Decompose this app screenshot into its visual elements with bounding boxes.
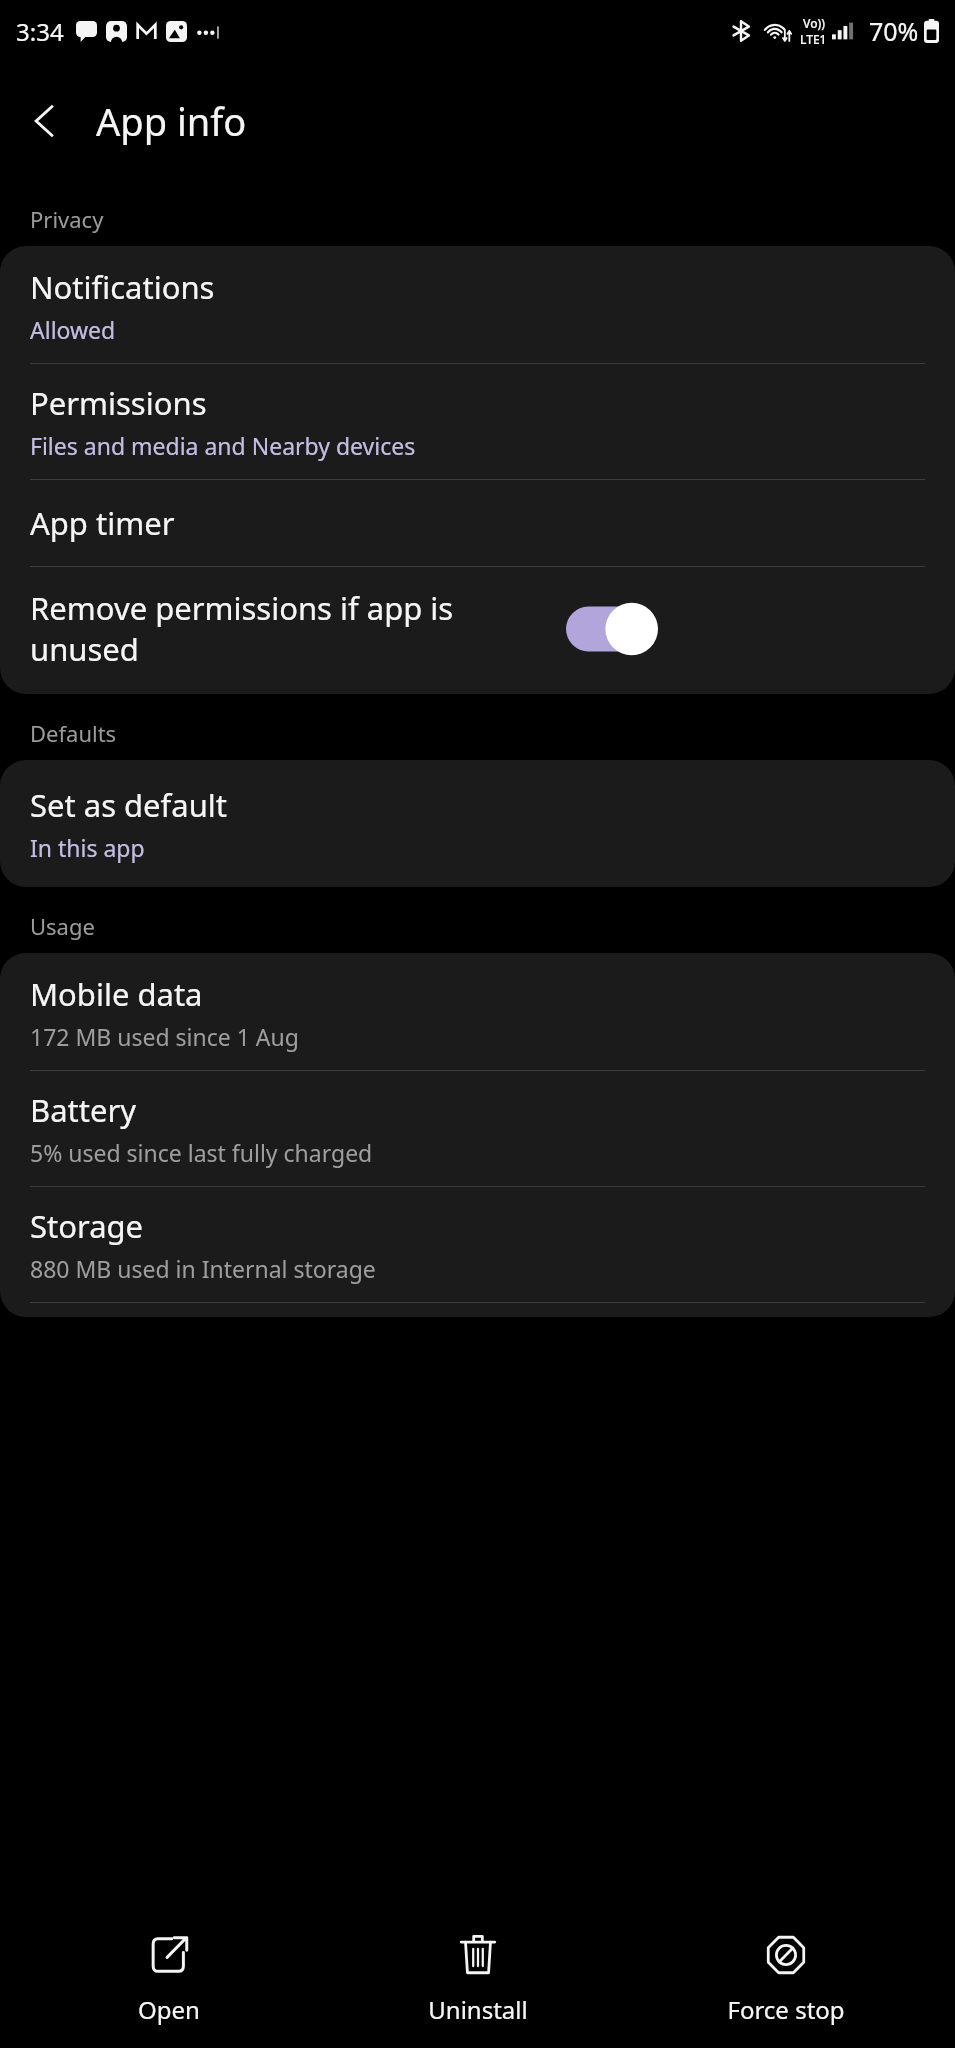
staticText: 3:34	[16, 15, 64, 48]
button[interactable]: Uninstall	[338, 1923, 618, 2034]
staticText: Files and media and Nearby devices	[30, 430, 416, 461]
staticText: Set as default	[30, 784, 228, 826]
staticText: App timer	[30, 502, 175, 544]
staticText: 880 MB used in Internal storage	[30, 1253, 376, 1284]
staticText: LTE1	[800, 31, 827, 47]
staticText: Remove permissions if app is unused	[30, 587, 550, 670]
staticText: Permissions	[30, 382, 207, 424]
button[interactable]: App timer	[0, 480, 955, 566]
staticText: Defaults	[30, 718, 117, 748]
button[interactable]: Force stop	[646, 1923, 926, 2034]
button[interactable]: Open	[29, 1923, 309, 2034]
staticText: 5% used since last fully charged	[30, 1137, 373, 1168]
staticText: Vo))	[803, 15, 825, 31]
staticText: Mobile data	[30, 973, 203, 1015]
button[interactable]: Mobile data	[0, 953, 955, 1070]
button[interactable]: Back	[8, 84, 82, 158]
button[interactable]: Notifications	[0, 246, 955, 363]
staticText: Uninstall	[428, 1993, 528, 2026]
button[interactable]: Set as default	[0, 760, 955, 887]
staticText: App info	[96, 95, 247, 147]
staticText: Storage	[30, 1205, 144, 1247]
button[interactable]: Permissions	[0, 364, 955, 479]
button[interactable]: Remove permissions if app is unused	[0, 567, 955, 694]
staticText: In this app	[30, 832, 145, 863]
other: Force stop	[762, 1931, 810, 1979]
staticText: Usage	[30, 911, 95, 941]
staticText: 70%	[869, 14, 919, 48]
button[interactable]: Storage	[0, 1187, 955, 1302]
staticText: Battery	[30, 1089, 137, 1131]
staticText: Allowed	[30, 314, 116, 345]
button[interactable]: Battery	[0, 1071, 955, 1186]
staticText: Privacy	[30, 204, 104, 234]
staticText: Force stop	[727, 1993, 845, 2026]
other: Open	[145, 1931, 193, 1979]
staticText: Open	[138, 1993, 200, 2026]
other: Uninstall	[454, 1931, 502, 1979]
staticText: Notifications	[30, 266, 215, 308]
staticText: 172 MB used since 1 Aug	[30, 1021, 299, 1052]
button[interactable]: Remove permissions if app is unused togg…	[566, 601, 658, 657]
